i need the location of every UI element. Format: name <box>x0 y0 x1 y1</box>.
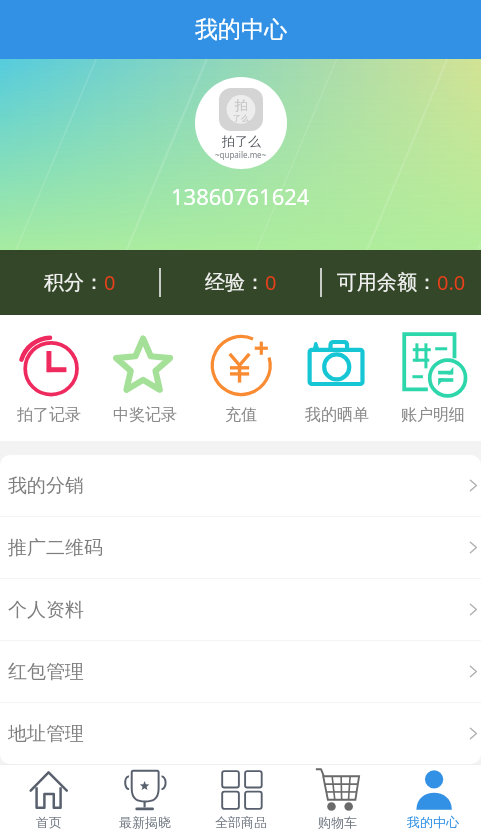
staticText: 充值 <box>225 405 257 425</box>
staticText: 13860761624 <box>171 181 310 211</box>
button[interactable]: 我的中心 <box>385 765 481 831</box>
button[interactable]: 推广二维码 <box>0 517 481 578</box>
button[interactable]: 积分： <box>0 250 159 315</box>
staticText: 我的中心 <box>195 15 287 44</box>
button[interactable]: 账户明细 <box>385 315 481 441</box>
staticText: 地址管理 <box>8 722 84 746</box>
staticText: 了么 <box>233 113 249 123</box>
staticText: 0 <box>265 269 277 296</box>
staticText: 账户明细 <box>401 405 465 425</box>
staticText: 0 <box>104 269 116 296</box>
staticText: 经验： <box>205 270 265 295</box>
button[interactable]: 首页 <box>0 765 97 831</box>
staticText: 购物车 <box>318 814 357 830</box>
button[interactable]: 中奖记录 <box>97 315 193 441</box>
button[interactable]: 购物车 <box>289 765 385 831</box>
button[interactable]: 最新揭晓 <box>97 765 193 831</box>
staticText: 个人资料 <box>8 598 84 622</box>
button[interactable]: Avatar <box>195 77 287 169</box>
button[interactable]: 经验： <box>161 250 320 315</box>
staticText: 全部商品 <box>215 814 267 830</box>
staticText: 我的晒单 <box>305 405 369 425</box>
staticText: 首页 <box>36 814 62 830</box>
button[interactable]: 充值 <box>193 315 289 441</box>
staticText: 拍了记录 <box>17 405 81 425</box>
button[interactable]: 我的分销 <box>0 455 481 516</box>
staticText: 积分： <box>44 270 104 295</box>
staticText: 我的中心 <box>407 814 459 830</box>
staticText: 我的分销 <box>8 474 84 498</box>
button[interactable]: 我的晒单 <box>289 315 385 441</box>
button[interactable]: 地址管理 <box>0 703 481 764</box>
staticText: 拍了么 <box>222 133 261 149</box>
staticText: 0.0 <box>437 269 466 296</box>
staticText: 中奖记录 <box>113 405 177 425</box>
button[interactable]: 拍了记录 <box>0 315 97 441</box>
staticText: 拍 <box>235 97 248 113</box>
staticText: 推广二维码 <box>8 536 103 560</box>
button[interactable]: 红包管理 <box>0 641 481 702</box>
staticText: ~qupaile.me~ <box>215 149 267 160</box>
button[interactable]: 个人资料 <box>0 579 481 640</box>
staticText: 可用余额： <box>337 270 437 295</box>
button[interactable]: 全部商品 <box>193 765 289 831</box>
staticText: 最新揭晓 <box>119 814 171 830</box>
button[interactable]: 可用余额： <box>322 250 481 315</box>
staticText: 红包管理 <box>8 660 84 684</box>
